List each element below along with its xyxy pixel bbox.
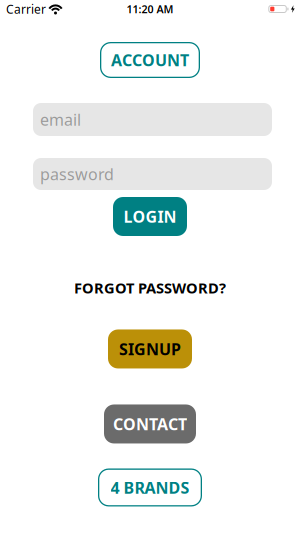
button[interactable]: ACCOUNT bbox=[100, 42, 200, 78]
button[interactable]: password bbox=[33, 158, 272, 190]
staticText: CONTACT bbox=[113, 413, 187, 435]
staticText: SIGNUP bbox=[119, 338, 181, 360]
staticText: ACCOUNT bbox=[111, 49, 189, 71]
staticText: password bbox=[40, 163, 114, 185]
staticText: email bbox=[40, 109, 81, 130]
staticText: Carrier bbox=[6, 1, 46, 17]
button[interactable]: email bbox=[33, 103, 272, 136]
button[interactable]: LOGIN bbox=[113, 197, 187, 236]
staticText: 11:20 AM bbox=[126, 2, 173, 16]
staticText: 4 BRANDS bbox=[110, 477, 189, 498]
button[interactable]: CONTACT bbox=[104, 404, 196, 443]
button[interactable]: 4 BRANDS bbox=[98, 468, 202, 506]
staticText: LOGIN bbox=[123, 206, 176, 227]
button[interactable]: SIGNUP bbox=[108, 329, 192, 368]
button[interactable]: FORGOT PASSWORD? bbox=[74, 278, 226, 297]
staticText: FORGOT PASSWORD? bbox=[74, 278, 226, 297]
